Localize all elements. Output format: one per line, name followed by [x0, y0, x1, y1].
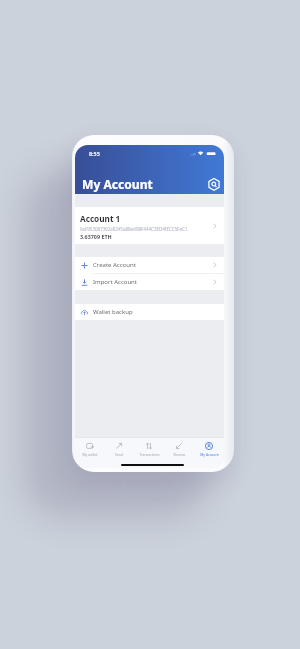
- button[interactable]: Account 1: [75, 207, 224, 244]
- staticText: Receive: [173, 452, 186, 457]
- button[interactable]: Send: [104, 439, 134, 457]
- staticText: 3.63709 ETH: [80, 233, 112, 240]
- staticText: Account 1: [80, 213, 121, 224]
- staticText: My Account: [200, 452, 219, 457]
- staticText: Send: [115, 452, 123, 457]
- button[interactable]: Wallet backup: [75, 304, 224, 320]
- staticText: My wallet: [82, 452, 98, 457]
- button[interactable]: My Account: [194, 439, 224, 457]
- staticText: Transactions: [139, 452, 160, 457]
- button[interactable]: Transactions: [134, 439, 164, 457]
- staticText: 0xF953087392c8245a88ed98F444C3ED4fECC5Fe…: [80, 226, 188, 232]
- button[interactable]: Receive: [164, 439, 194, 457]
- button[interactable]: My wallet: [75, 439, 104, 457]
- button[interactable]: Import Account: [75, 274, 224, 290]
- staticText: Create Account: [93, 261, 136, 269]
- button[interactable]: Create Account: [75, 257, 224, 273]
- staticText: My Account: [82, 176, 153, 192]
- staticText: Wallet backup: [93, 308, 133, 316]
- staticText: 8:55: [89, 150, 100, 157]
- other: Wallet logo: [208, 178, 220, 190]
- staticText: Import Account: [93, 278, 137, 286]
